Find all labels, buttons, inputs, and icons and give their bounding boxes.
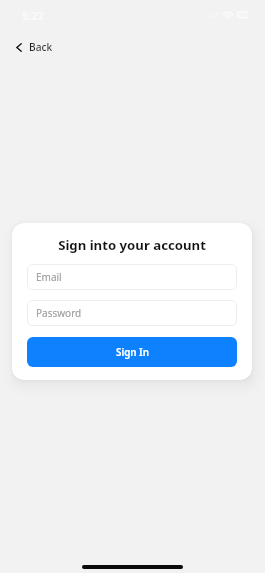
button[interactable]: Password bbox=[27, 300, 237, 326]
staticText: 5:22 bbox=[22, 8, 44, 23]
button[interactable]: Back bbox=[11, 36, 61, 58]
staticText: Sign into your account bbox=[12, 236, 252, 254]
staticText: Back bbox=[29, 40, 53, 54]
button[interactable]: Sign In bbox=[27, 337, 237, 367]
button[interactable]: Email bbox=[27, 264, 237, 290]
staticText: Email bbox=[36, 270, 62, 284]
staticText: Sign In bbox=[116, 346, 149, 359]
staticText: Password bbox=[36, 306, 82, 320]
